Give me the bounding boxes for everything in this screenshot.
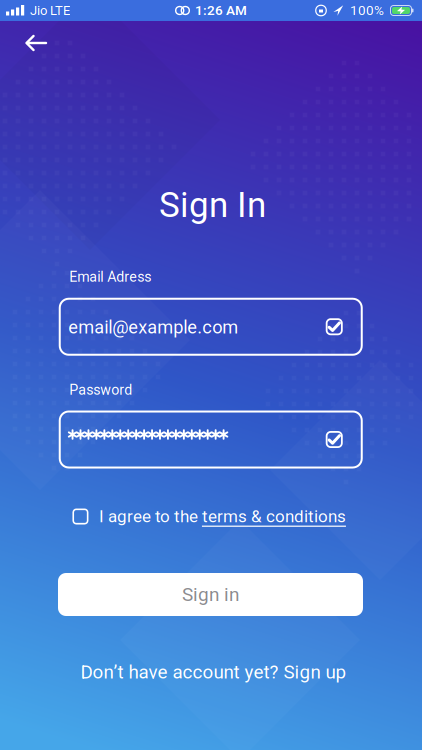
staticText: terms & conditions	[202, 507, 346, 526]
staticText: Don’t have account yet? Sign up	[80, 661, 346, 683]
staticText: I agree to the	[99, 507, 202, 526]
staticText: 1:26 AM	[195, 3, 247, 18]
staticText: Jio LTE	[30, 3, 70, 18]
staticText: Password	[69, 382, 132, 398]
staticText: 100%	[350, 3, 384, 18]
button[interactable]	[25, 35, 47, 51]
button[interactable]: Sign in	[58, 573, 363, 616]
staticText: Sign in	[182, 584, 239, 605]
button[interactable]: I agree to the	[72, 507, 346, 526]
staticText: Email Adress	[69, 269, 151, 285]
button[interactable]: Don’t have account yet? Sign up	[80, 661, 346, 683]
staticText: email@example.com	[68, 317, 238, 338]
staticText: Sign In	[159, 185, 266, 225]
